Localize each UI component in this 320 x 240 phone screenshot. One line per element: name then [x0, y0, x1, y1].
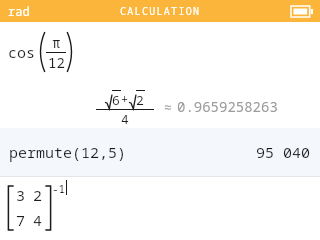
staticText: 2	[136, 91, 144, 109]
staticText: 95 040	[256, 142, 311, 162]
staticText: 12	[48, 53, 65, 72]
button[interactable]: cos	[0, 22, 320, 128]
staticText: cos	[8, 42, 36, 62]
button[interactable]: Battery	[289, 3, 315, 19]
staticText: permute(12,5)	[9, 142, 127, 162]
staticText: +	[121, 91, 129, 107]
staticText: 6	[112, 91, 120, 109]
staticText: 4	[33, 210, 43, 230]
button[interactable]: 3	[7, 185, 320, 231]
button[interactable]: rad	[8, 3, 30, 19]
staticText: -1	[52, 181, 66, 196]
staticText: CALCULATION	[120, 4, 201, 18]
staticText: 7	[16, 210, 26, 230]
staticText: 4	[121, 110, 129, 128]
staticText: 0.9659258263	[177, 97, 278, 116]
button[interactable]: permute(12,5)	[0, 128, 320, 176]
staticText: 3	[16, 185, 26, 205]
staticText: 2	[33, 185, 43, 205]
staticText: ≈	[164, 98, 172, 116]
staticText: π	[52, 33, 61, 52]
